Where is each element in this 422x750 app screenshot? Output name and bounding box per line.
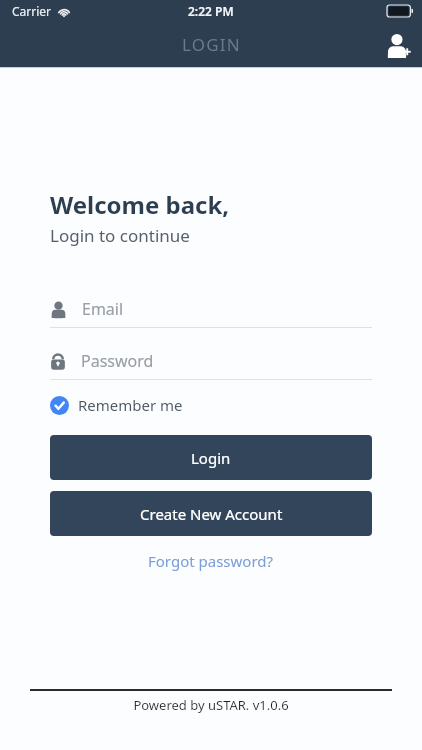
button[interactable]: Add user [374,22,422,67]
staticText: Password [81,350,154,372]
button[interactable]: Forgot password? [140,549,282,573]
staticText: Email [82,298,124,320]
button[interactable]: Password [50,343,372,380]
staticText: Carrier [12,3,52,19]
staticText: LOGIN [182,33,241,56]
staticText: Login to continue [50,224,190,247]
staticText: Powered by uSTAR. v1.0.6 [0,696,422,714]
staticText: Login [191,448,231,468]
staticText: Create New Account [140,504,283,524]
button[interactable]: Login [50,435,372,480]
staticText: Remember me [78,395,183,415]
staticText: Forgot password? [148,551,274,571]
staticText: Welcome back, [50,188,230,221]
staticText: 2:22 PM [188,3,234,19]
button[interactable]: Remember me [50,392,183,418]
button[interactable]: Email [50,291,372,328]
button[interactable]: Create New Account [50,491,372,536]
